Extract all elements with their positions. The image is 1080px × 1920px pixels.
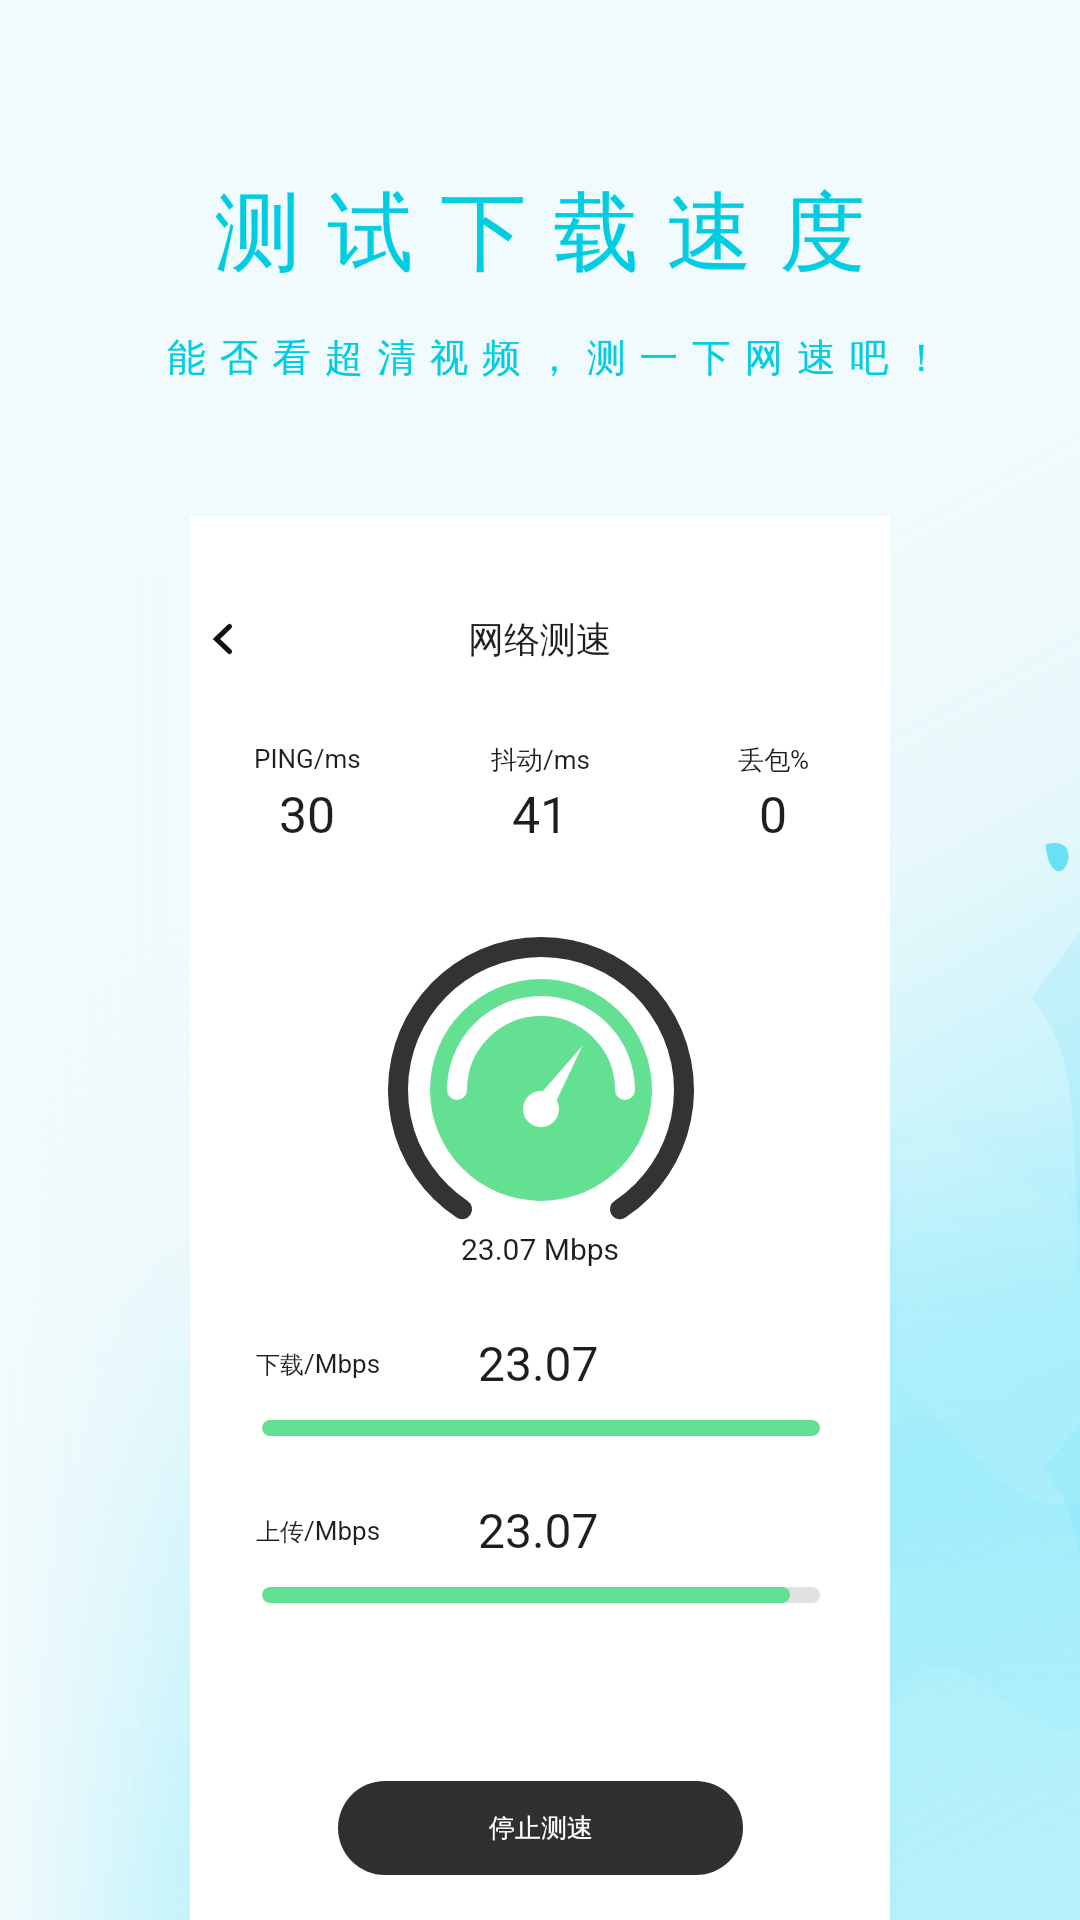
staticText: /Mbps	[304, 1516, 381, 1546]
staticText: 测试下载速度	[27, 179, 1080, 287]
staticText: 23.07 Mbps	[190, 1232, 890, 1267]
staticText: 抖动/ms	[491, 744, 590, 777]
staticText: 0	[759, 787, 788, 846]
staticText: 41	[512, 787, 569, 846]
staticText: 丢包%	[738, 744, 810, 777]
staticText: 下载	[256, 1350, 304, 1380]
staticText: 停止测速	[489, 1812, 593, 1845]
button[interactable]: 停止测速	[338, 1781, 743, 1875]
staticText: 上传	[256, 1517, 304, 1547]
staticText: 23.07	[478, 1503, 599, 1559]
staticText: 能否看超清视频，测一下网速吧！	[42, 334, 1080, 383]
staticText: 30	[279, 787, 336, 846]
staticText: 网络测速	[190, 617, 890, 662]
staticText: 23.07	[478, 1336, 599, 1392]
button[interactable]: Back	[185, 601, 261, 677]
staticText: PING/ms	[254, 744, 361, 774]
staticText: /Mbps	[304, 1349, 381, 1379]
